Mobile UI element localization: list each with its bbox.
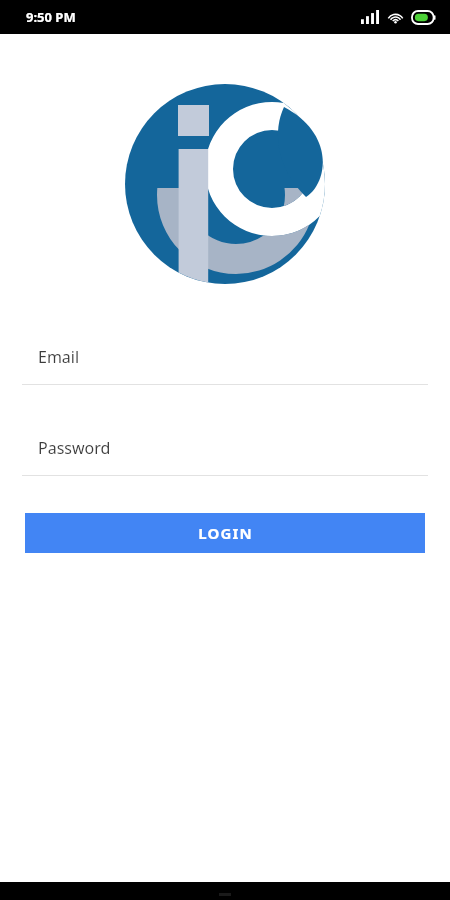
- staticText: Email: [38, 346, 80, 368]
- button[interactable]: LOGIN: [25, 513, 425, 553]
- button[interactable]: Email: [0, 346, 450, 385]
- staticText: 9:50 PM: [26, 8, 76, 26]
- staticText: Password: [38, 437, 111, 459]
- staticText: LOGIN: [198, 523, 253, 543]
- button[interactable]: Password: [0, 437, 450, 476]
